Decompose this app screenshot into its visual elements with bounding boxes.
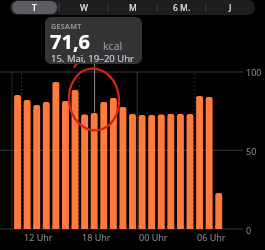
staticText: 0 — [246, 224, 252, 236]
staticText: 12 Uhr — [24, 231, 53, 243]
staticText: 06 Uhr — [197, 231, 226, 243]
staticText: 50 — [246, 145, 257, 157]
button[interactable]: J — [206, 0, 255, 15]
staticText: 6 M. — [173, 2, 191, 14]
staticText: J — [229, 2, 232, 14]
staticText: W — [80, 2, 88, 14]
staticText: 15. Mai, 19–20 Uhr — [51, 52, 134, 64]
button[interactable]: M — [108, 0, 157, 15]
button[interactable]: T — [10, 0, 59, 15]
button[interactable]: W — [59, 0, 108, 15]
button[interactable]: GESAMT — [45, 17, 142, 64]
staticText: 18 Uhr — [82, 231, 111, 243]
staticText: kcal — [103, 39, 123, 53]
button[interactable]: 6 M. — [157, 0, 206, 15]
staticText: M — [129, 2, 137, 14]
staticText: T — [32, 2, 37, 14]
staticText: 100 — [246, 66, 262, 78]
staticText: GESAMT — [51, 21, 82, 31]
staticText: 71,6 — [50, 28, 91, 55]
staticText: 00 Uhr — [139, 231, 168, 243]
